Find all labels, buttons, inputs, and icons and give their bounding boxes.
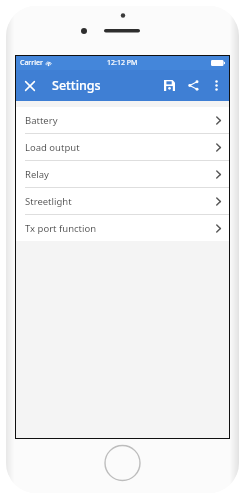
staticText: Settings <box>52 77 101 94</box>
button[interactable]: Load output <box>16 134 229 160</box>
button[interactable]: Share <box>181 70 205 101</box>
button[interactable]: Tx port function <box>16 215 229 241</box>
staticText: Load output <box>25 141 80 154</box>
button[interactable]: Save <box>157 70 181 101</box>
button[interactable]: Streetlight <box>16 188 229 214</box>
button[interactable]: More options <box>205 70 227 101</box>
staticText: Carrier <box>20 58 43 68</box>
button[interactable]: Battery <box>16 107 229 133</box>
button[interactable]: Close <box>16 70 44 101</box>
staticText: Relay <box>25 168 49 181</box>
staticText: Battery <box>25 114 58 127</box>
button[interactable]: Relay <box>16 161 229 187</box>
staticText: Tx port function <box>25 222 97 235</box>
staticText: Streetlight <box>25 195 72 208</box>
staticText: 12:12 PM <box>107 58 138 68</box>
